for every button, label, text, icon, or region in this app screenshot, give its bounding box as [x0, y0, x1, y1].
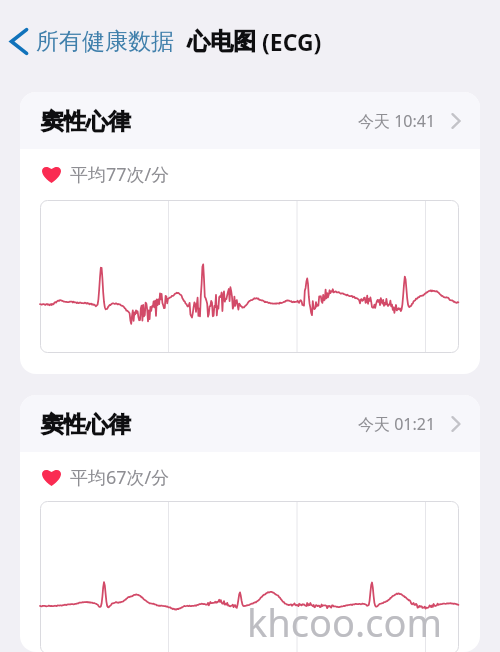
staticText: khcoo.com [247, 596, 442, 648]
button[interactable]: 窦性心律 [20, 395, 480, 652]
staticText: 今天 10:41 [358, 110, 436, 132]
staticText: 所有健康数据 [36, 27, 174, 56]
button[interactable]: 窦性心律 [20, 92, 480, 374]
staticText: 今天 01:21 [358, 413, 436, 435]
staticText: 平均77次/分 [70, 162, 170, 187]
other: Open ECG recording [451, 112, 461, 130]
staticText: (ECG) [256, 26, 322, 57]
other: Back [9, 27, 29, 56]
button[interactable]: Back [0, 21, 178, 62]
other: Open ECG recording [451, 415, 461, 433]
staticText: 窦性心律 [41, 410, 131, 438]
staticText: 窦性心律 [41, 107, 131, 135]
staticText: 心电图 [187, 27, 256, 56]
staticText: 平均67次/分 [70, 465, 170, 490]
